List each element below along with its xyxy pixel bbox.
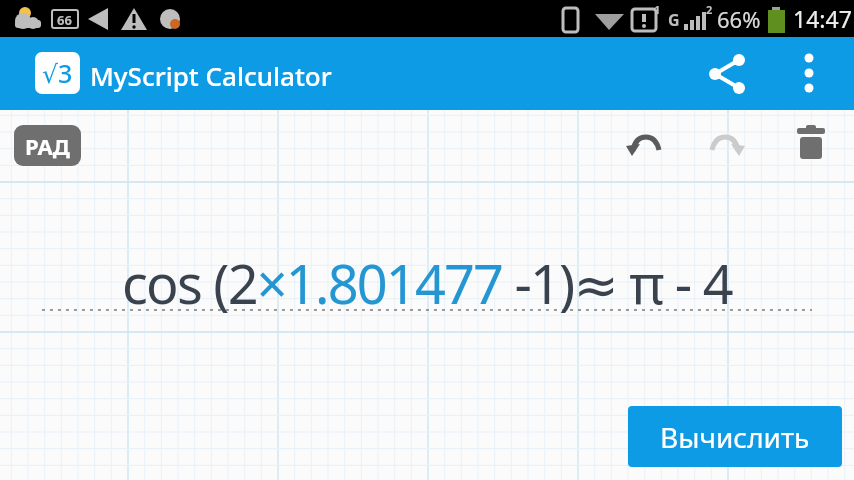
button[interactable]: РАД [14,125,81,166]
button[interactable] [791,122,831,162]
staticText: Вычислить [660,418,810,456]
staticText: MyScript Calculator [90,58,332,93]
button[interactable] [707,52,751,96]
button[interactable]: Вычислить [628,406,842,467]
staticText: 14:47 [793,3,852,34]
staticText: 2 [706,2,713,17]
button[interactable] [790,52,828,96]
staticText: √3 [42,56,73,90]
button[interactable] [626,134,662,158]
staticText: 66 [57,11,72,29]
staticText: 66% [717,4,761,34]
staticText: G [668,9,680,31]
staticText: РАД [25,131,70,161]
staticText: cos (2×1.801477 -1)≈ π - 4 [122,246,732,320]
staticText: 1 [654,2,661,17]
button[interactable] [709,134,745,158]
button[interactable]: √3 [35,52,80,94]
